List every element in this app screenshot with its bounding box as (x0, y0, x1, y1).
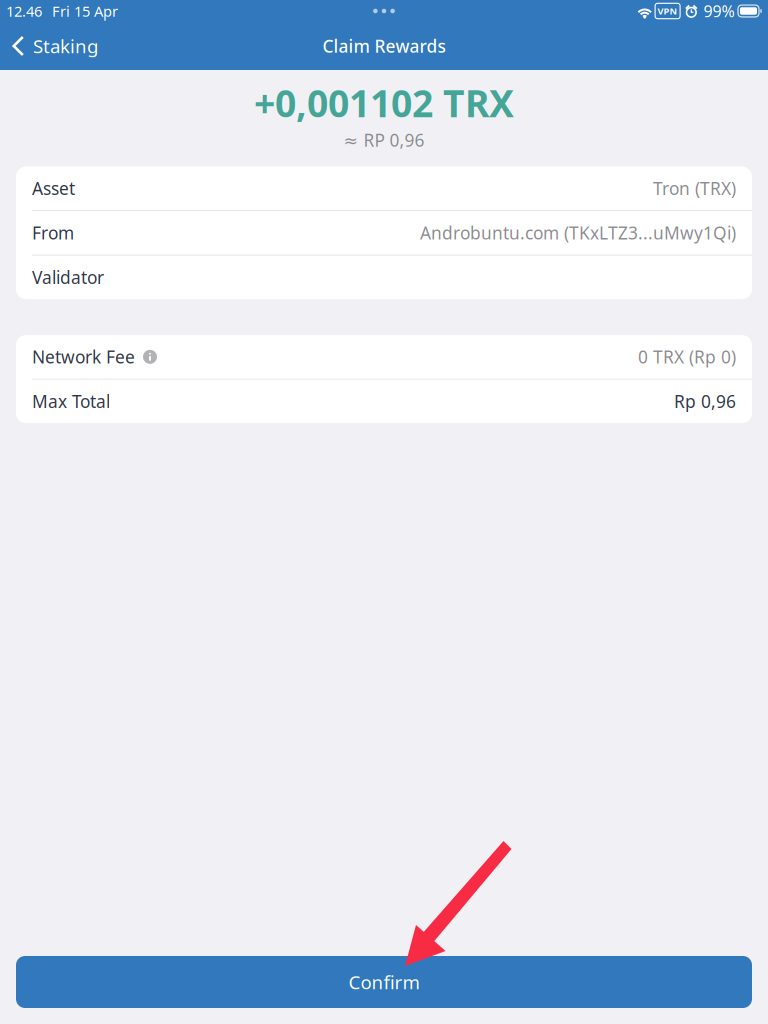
staticText: From (32, 221, 74, 244)
staticText: Confirm (348, 970, 419, 994)
staticText: Fri 15 Apr (52, 1, 118, 21)
staticText: Validator (32, 266, 104, 289)
staticText: Androbuntu.com (TKxLTZ3...uMwy1Qi) (420, 221, 736, 244)
staticText: Rp 0,96 (674, 390, 736, 413)
staticText: +0,001102 TRX (254, 78, 514, 128)
staticText: 0 TRX (Rp 0) (638, 345, 736, 368)
button[interactable]: Staking (0, 23, 108, 68)
button[interactable]: Confirm (16, 956, 752, 1008)
staticText: 12.46 (6, 1, 42, 21)
staticText: VPN (658, 5, 678, 17)
staticText: Staking (33, 34, 98, 58)
staticText: 99% (703, 0, 734, 22)
staticText: Network Fee (32, 345, 135, 368)
staticText: ≈ RP 0,96 (343, 129, 424, 152)
staticText: Asset (32, 177, 75, 200)
staticText: Max Total (32, 390, 110, 413)
staticText: Tron (TRX) (653, 177, 736, 200)
staticText: Claim Rewards (322, 34, 445, 57)
